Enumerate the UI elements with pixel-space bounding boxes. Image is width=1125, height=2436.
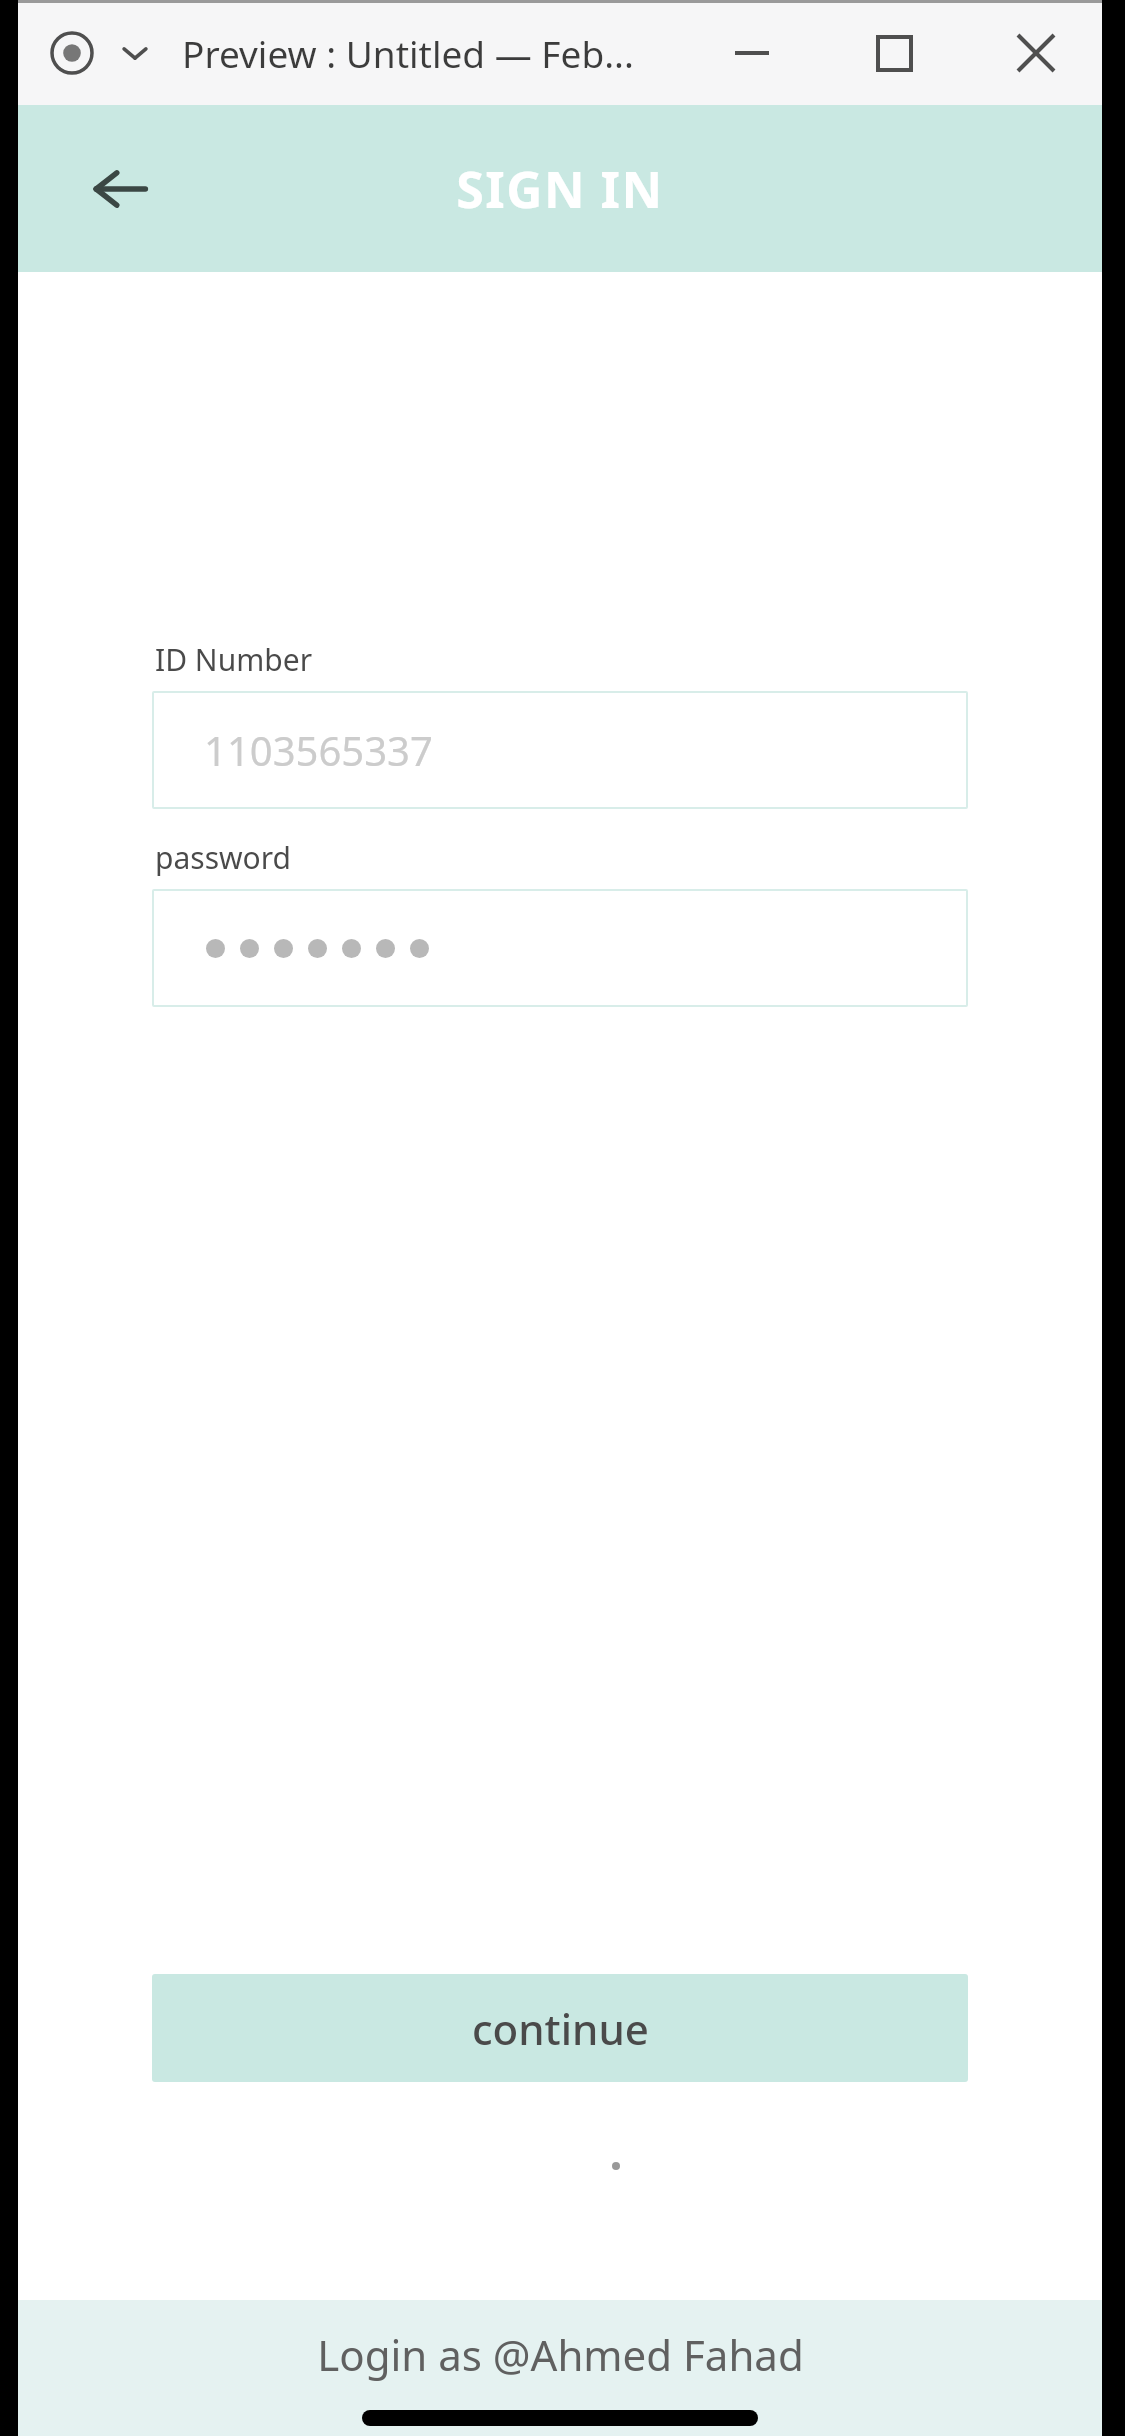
button[interactable]: More options xyxy=(112,30,158,76)
staticText: SIGN IN xyxy=(456,155,664,223)
button[interactable]: Close xyxy=(988,13,1084,93)
button[interactable]: password xyxy=(152,837,968,1007)
button[interactable]: Record xyxy=(44,25,100,81)
button[interactable]: Back xyxy=(74,143,166,235)
staticText: ID Number xyxy=(155,639,313,680)
button[interactable]: Minimize xyxy=(704,13,800,93)
button[interactable]: Maximize xyxy=(846,13,942,93)
staticText: continue xyxy=(472,2000,649,2057)
staticText: password xyxy=(155,837,291,878)
button[interactable]: ID Number xyxy=(152,639,968,809)
button[interactable]: continue xyxy=(152,1974,968,2082)
staticText: Preview : Untitled — Feb... xyxy=(182,28,634,78)
staticText: 1103565337 xyxy=(204,723,433,777)
button[interactable]: Login as @Ahmed Fahad xyxy=(317,2326,804,2383)
